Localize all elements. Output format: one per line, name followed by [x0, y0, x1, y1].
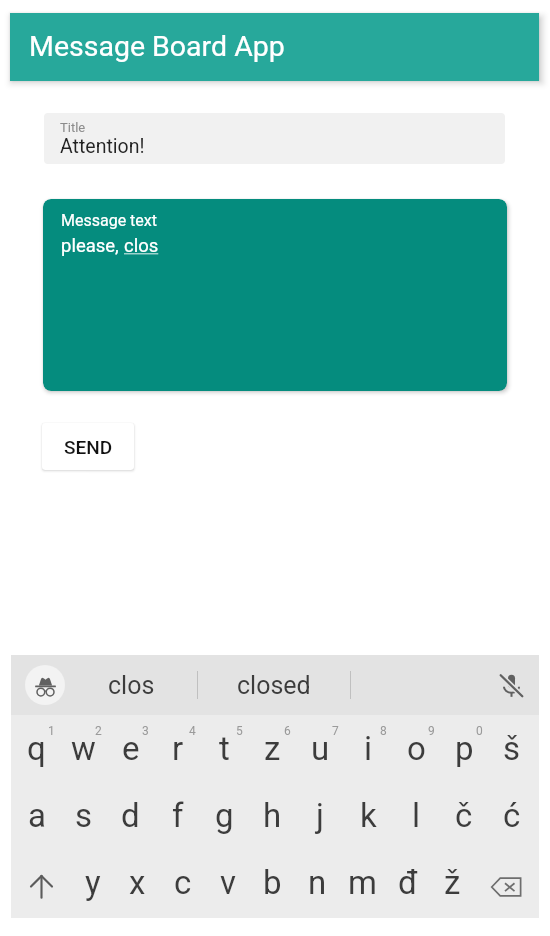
staticText: n: [308, 863, 327, 902]
staticText: o: [407, 729, 426, 768]
staticText: v: [220, 863, 236, 902]
staticText: h: [263, 796, 282, 835]
button[interactable]: Title: [44, 113, 505, 164]
staticText: y: [85, 863, 101, 902]
button[interactable]: ž: [430, 849, 475, 916]
other: Backspace: [489, 870, 523, 904]
staticText: 5: [236, 724, 243, 738]
button[interactable]: Backspace: [475, 849, 536, 916]
staticText: closed: [237, 671, 311, 700]
button[interactable]: g: [201, 782, 248, 849]
staticText: ž: [444, 863, 461, 902]
button[interactable]: Message text: [43, 199, 507, 391]
button[interactable]: o: [392, 715, 440, 782]
staticText: č: [455, 796, 473, 835]
staticText: d: [121, 796, 140, 835]
button[interactable]: v: [205, 849, 250, 916]
staticText: Title: [60, 120, 86, 135]
staticText: u: [311, 729, 330, 768]
staticText: 9: [428, 724, 435, 738]
button[interactable]: ć: [488, 782, 536, 849]
staticText: j: [316, 796, 324, 835]
staticText: clos: [108, 671, 155, 700]
staticText: w: [71, 729, 96, 768]
staticText: 1: [48, 724, 55, 738]
button[interactable]: m: [340, 849, 385, 916]
button[interactable]: p: [440, 715, 488, 782]
staticText: 7: [332, 724, 339, 738]
button[interactable]: d: [107, 782, 154, 849]
staticText: SEND: [64, 436, 113, 458]
staticText: Message Board App: [29, 30, 285, 63]
button[interactable]: č: [440, 782, 488, 849]
staticText: e: [122, 729, 140, 768]
button[interactable]: t: [201, 715, 248, 782]
button[interactable]: SEND: [42, 423, 134, 470]
button[interactable]: đ: [385, 849, 430, 916]
staticText: r: [172, 729, 184, 768]
staticText: 4: [189, 724, 196, 738]
staticText: Attention!: [60, 135, 145, 158]
button[interactable]: e: [107, 715, 154, 782]
staticText: f: [172, 796, 184, 835]
button[interactable]: i: [344, 715, 392, 782]
staticText: clos: [124, 235, 159, 257]
staticText: q: [27, 729, 46, 768]
button[interactable]: x: [115, 849, 160, 916]
staticText: s: [75, 796, 93, 835]
staticText: p: [455, 729, 474, 768]
staticText: g: [215, 796, 234, 835]
other: Shift: [29, 874, 54, 899]
staticText: 6: [284, 724, 291, 738]
button[interactable]: a: [13, 782, 60, 849]
staticText: 3: [142, 724, 149, 738]
button[interactable]: š: [488, 715, 536, 782]
button[interactable]: f: [154, 782, 201, 849]
button[interactable]: k: [344, 782, 392, 849]
staticText: 8: [380, 724, 387, 738]
staticText: Message text: [61, 211, 157, 230]
button[interactable]: h: [248, 782, 296, 849]
staticText: 0: [476, 724, 483, 738]
staticText: i: [364, 729, 373, 768]
button[interactable]: r: [154, 715, 201, 782]
button[interactable]: s: [60, 782, 107, 849]
staticText: 2: [95, 724, 102, 738]
button[interactable]: Shift: [13, 849, 70, 916]
staticText: š: [503, 729, 521, 768]
staticText: c: [174, 863, 192, 902]
staticText: đ: [398, 863, 418, 902]
staticText: a: [28, 796, 46, 835]
staticText: k: [360, 796, 377, 835]
staticText: b: [263, 863, 282, 902]
staticText: t: [219, 729, 230, 768]
staticText: m: [348, 863, 377, 902]
staticText: l: [412, 796, 421, 835]
button[interactable]: q: [13, 715, 60, 782]
staticText: x: [129, 863, 146, 902]
button[interactable]: Message Board App: [10, 13, 539, 81]
button[interactable]: j: [296, 782, 344, 849]
button[interactable]: Incognito mode: [25, 665, 65, 705]
button[interactable]: Voice input disabled: [495, 669, 527, 701]
button[interactable]: l: [392, 782, 440, 849]
button[interactable]: b: [250, 849, 295, 916]
button[interactable]: y: [70, 849, 115, 916]
button[interactable]: c: [160, 849, 205, 916]
staticText: ć: [503, 796, 521, 835]
button[interactable]: u: [296, 715, 344, 782]
button[interactable]: n: [295, 849, 340, 916]
staticText: please,: [61, 235, 124, 257]
staticText: z: [264, 729, 281, 768]
button[interactable]: z: [248, 715, 296, 782]
button[interactable]: w: [60, 715, 107, 782]
